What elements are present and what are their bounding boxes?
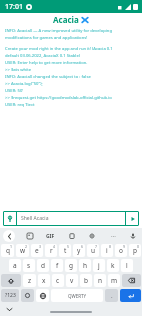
staticText: u [91,246,96,255]
staticText: >> $ats white [5,67,32,73]
staticText: m [111,276,118,285]
staticText: h [83,261,88,270]
staticText: USER: req Tiect [5,102,35,108]
button[interactable]: . [105,289,118,302]
staticText: z [28,276,32,285]
staticText: j [98,261,100,270]
staticText: 2 [25,244,28,249]
staticText: QWERTY [68,293,87,299]
button[interactable]: Hide keyboard [5,305,13,313]
button[interactable]: Back [3,230,15,242]
staticText: 17:01 [5,2,23,12]
button[interactable]: z [23,274,36,287]
staticText: ?123 [5,292,16,299]
staticText: 1 [10,244,13,249]
button[interactable]: Settings [86,230,98,242]
staticText: Shell Acacia [21,215,49,222]
button[interactable]: Stickers [24,230,36,242]
button[interactable]: o [115,244,127,257]
button[interactable]: Clipboard [66,230,78,242]
button[interactable]: Send [126,211,139,226]
button[interactable]: n [94,274,106,287]
staticText: . [111,292,113,300]
staticText: l [126,261,128,270]
button[interactable]: c [52,274,64,287]
staticText: b [84,276,88,285]
staticText: 6 [81,244,84,249]
staticText: y [77,246,81,255]
button[interactable]: q [1,244,14,257]
staticText: USER: Enter help to get more information… [5,60,88,66]
button[interactable]: Shell Acacia [17,211,125,226]
staticText: t [64,246,67,255]
staticText: o [119,246,123,255]
staticText: g [69,261,73,270]
button[interactable]: u [87,244,99,257]
button[interactable]: Enter [120,289,141,302]
staticText: GIF [46,233,55,240]
staticText: 4 [53,244,56,249]
button[interactable]: ?123 [1,289,19,302]
staticText: d [41,261,45,270]
staticText: Acacia [53,14,79,25]
staticText: s [27,261,31,270]
staticText: n [98,276,103,285]
button[interactable]: Voice input [127,230,139,242]
button[interactable]: k [107,259,119,272]
button[interactable]: d [37,259,49,272]
staticText: 0 [137,244,140,249]
button[interactable]: l [121,259,133,272]
staticText: v [70,276,74,285]
button[interactable]: Emoji and comma [21,289,34,302]
button[interactable]: QWERTY [51,289,103,302]
staticText: Create your mod right in the app and run… [5,46,113,52]
button[interactable]: f [51,259,63,272]
button[interactable]: Shift [1,274,21,287]
staticText: USER: 50' [5,88,24,94]
button[interactable]: v [66,274,78,287]
staticText: 3 [39,244,42,249]
staticText: x [42,276,46,285]
button[interactable]: j [93,259,105,272]
staticText: 5 [67,244,70,249]
staticText: f [56,261,59,270]
button[interactable]: p [129,244,141,257]
staticText: q [6,246,10,255]
staticText: 7 [95,244,98,249]
button[interactable]: More [107,230,119,242]
staticText: INFO: AcaciaX changed the subject to : f… [5,74,91,80]
staticText: modifications for games and applications… [5,35,88,41]
button[interactable]: t [59,244,71,257]
button[interactable]: y [73,244,85,257]
staticText: default 03.06.2022, AcaciaX 0.1 Stable) [5,53,81,59]
button[interactable]: Backspace [122,274,141,287]
button[interactable]: a [9,259,21,272]
staticText: >> Acacia.log("50"); [5,81,43,87]
button[interactable]: g [65,259,77,272]
staticText: 8 [109,244,112,249]
staticText: r [50,246,53,255]
staticText: ··· [111,232,116,240]
staticText: >> $request.get https://goodmodslab-offi… [5,95,112,101]
button[interactable]: e [31,244,43,257]
button[interactable]: m [108,274,120,287]
staticText: p [133,246,137,255]
button[interactable]: Attach [3,211,16,226]
staticText: w [20,246,26,255]
staticText: i [106,246,108,255]
staticText: c [56,276,60,285]
staticText: 9 [123,244,126,249]
staticText: e [35,246,39,255]
staticText: INFO: AcaciaX — A new improved utility f… [5,28,113,34]
button[interactable]: Change language [36,289,49,302]
staticText: a [13,261,17,270]
button[interactable]: r [45,244,57,257]
button[interactable]: s [23,259,35,272]
button[interactable]: GIF [44,231,57,242]
staticText: k [111,261,115,270]
button[interactable]: i [101,244,113,257]
button[interactable]: h [79,259,91,272]
button[interactable]: b [80,274,92,287]
button[interactable]: w [16,244,29,257]
button[interactable]: x [38,274,50,287]
